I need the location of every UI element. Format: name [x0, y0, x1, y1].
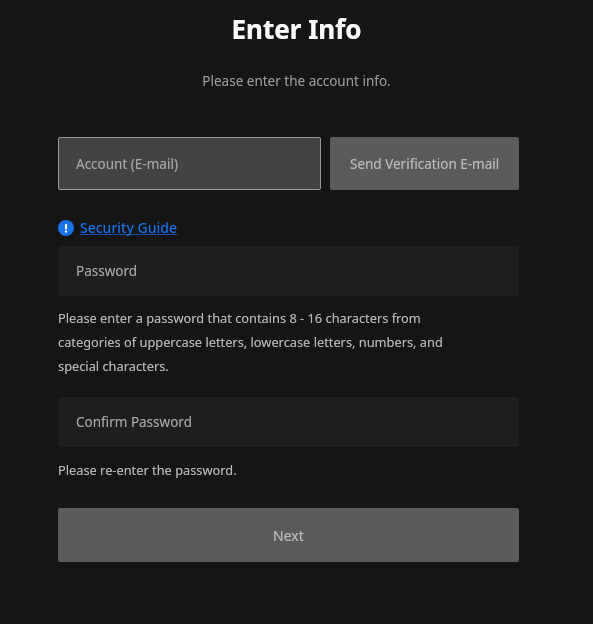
staticText: Enter Info [0, 11, 593, 46]
staticText: Security Guide [80, 218, 177, 237]
button[interactable]: Account (E-mail) [58, 137, 321, 190]
staticText: Confirm Password [76, 413, 192, 431]
button[interactable]: Confirm Password [58, 397, 519, 447]
staticText: Please enter a password that contains 8 … [58, 309, 421, 326]
other: Information [58, 220, 74, 236]
staticText: categories of uppercase letters, lowerca… [58, 333, 443, 350]
staticText: Password [76, 262, 138, 280]
staticText: Account (E-mail) [76, 155, 178, 173]
staticText: special characters. [58, 357, 169, 374]
button[interactable]: Next [58, 508, 519, 562]
button[interactable]: Information [58, 218, 181, 237]
staticText: Please re-enter the password. [58, 461, 237, 478]
button[interactable]: Password [58, 246, 519, 296]
staticText: Send Verification E-mail [350, 155, 500, 173]
button[interactable]: Send Verification E-mail [330, 137, 519, 190]
staticText: Please enter the account info. [0, 72, 593, 90]
staticText: Next [273, 526, 304, 545]
